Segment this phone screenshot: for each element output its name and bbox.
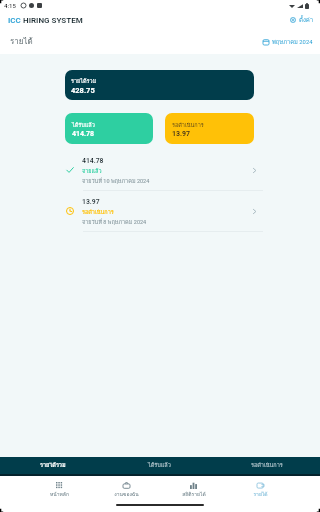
- staticText: 428.75: [71, 86, 95, 95]
- staticText: จ่ายวันที่ 10 พฤษภาคม 2024: [82, 177, 150, 186]
- staticText: รายได้รวม: [40, 461, 66, 470]
- staticText: 13.97: [82, 198, 100, 206]
- button[interactable]: ตั้งค่า: [290, 15, 314, 25]
- staticText: รอดำเนินการ: [172, 121, 204, 130]
- staticText: รายได้: [253, 490, 268, 498]
- button[interactable]: หน้าหลัก Home: [26, 476, 93, 503]
- staticText: รอดำเนินการ: [251, 461, 283, 470]
- staticText: ICC: [8, 16, 23, 25]
- staticText: 414.78: [82, 157, 104, 165]
- staticText: 414.78: [72, 130, 95, 138]
- staticText: ได้รับแล้ว: [72, 121, 95, 130]
- button[interactable]: รายได้ Income: [227, 476, 294, 503]
- button[interactable]: งานของฉัน My jobs: [93, 476, 160, 503]
- button[interactable]: 414.78: [0, 150, 320, 190]
- staticText: จ่ายแล้ว: [82, 167, 102, 176]
- button[interactable]: รอดำเนินการ: [165, 113, 254, 144]
- button[interactable]: รอดำเนินการ: [213, 457, 320, 474]
- button[interactable]: พฤษภาคม 2024: [263, 37, 313, 46]
- button[interactable]: ได้รับแล้ว: [65, 113, 153, 144]
- staticText: สถิติรายได้: [182, 490, 206, 498]
- staticText: HIRING SYSTEM: [23, 16, 83, 25]
- staticText: รอดำเนินการ: [82, 208, 114, 217]
- staticText: ตั้งค่า: [299, 15, 314, 25]
- staticText: จ่ายวันที่ 8 พฤษภาคม 2024: [82, 218, 147, 227]
- button[interactable]: ได้รับแล้ว: [106, 457, 213, 474]
- button[interactable]: รายได้รวม: [65, 70, 254, 100]
- staticText: รายได้รวม: [71, 77, 97, 86]
- button[interactable]: สถิติรายได้ Statistics: [160, 476, 227, 503]
- staticText: รายได้: [10, 35, 33, 48]
- staticText: งานของฉัน: [114, 490, 139, 498]
- staticText: หน้าหลัก: [50, 490, 69, 498]
- button[interactable]: 13.97: [0, 191, 320, 231]
- staticText: 4:15: [4, 2, 16, 9]
- staticText: ได้รับแล้ว: [148, 461, 171, 470]
- button[interactable]: รายได้รวม: [0, 457, 106, 474]
- staticText: พฤษภาคม 2024: [272, 37, 313, 46]
- staticText: 13.97: [172, 130, 191, 138]
